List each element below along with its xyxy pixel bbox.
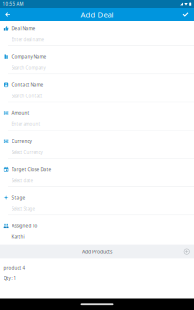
staticText: Currency — [11, 138, 31, 144]
button[interactable]: Stage — [0, 194, 194, 213]
staticText: Search Company — [12, 65, 46, 71]
staticText: product 4 — [4, 265, 26, 271]
button[interactable]: Contact Name — [0, 81, 194, 100]
staticText: Add Products — [82, 248, 112, 255]
button[interactable]: Amount — [0, 109, 194, 128]
staticText: Amount — [11, 110, 29, 116]
button[interactable]: Company Name — [0, 53, 194, 72]
staticText: Stage — [11, 194, 25, 201]
staticText: Add Deal — [80, 9, 113, 20]
button[interactable]: Add Products — [0, 245, 194, 259]
staticText: Contact Name — [11, 82, 43, 88]
staticText: Target Close Date — [11, 166, 51, 173]
button[interactable]: Deal Name — [0, 24, 194, 43]
button[interactable]: Target Close Date — [0, 165, 194, 184]
staticText: Search Contact — [12, 93, 43, 99]
staticText: Select Currency — [12, 149, 43, 155]
staticText: Select date — [12, 177, 33, 183]
button[interactable]: Currency — [0, 137, 194, 156]
staticText: Company Name — [11, 53, 46, 60]
staticText: Select Stage — [12, 206, 35, 212]
button[interactable]: product 4 — [0, 259, 194, 298]
staticText: Enter amount — [12, 121, 41, 127]
button[interactable]: Assigned To — [0, 222, 194, 241]
staticText: Qty : 1 — [4, 275, 17, 281]
staticText: 10:55 AM — [2, 1, 23, 7]
staticText: Assigned To — [11, 223, 37, 229]
staticText: Deal Name — [11, 25, 35, 32]
staticText: Karthi — [12, 234, 25, 240]
staticText: Enter deal name — [12, 36, 44, 42]
button[interactable]: Save — [178, 8, 192, 21]
button[interactable]: Back — [0, 8, 14, 21]
